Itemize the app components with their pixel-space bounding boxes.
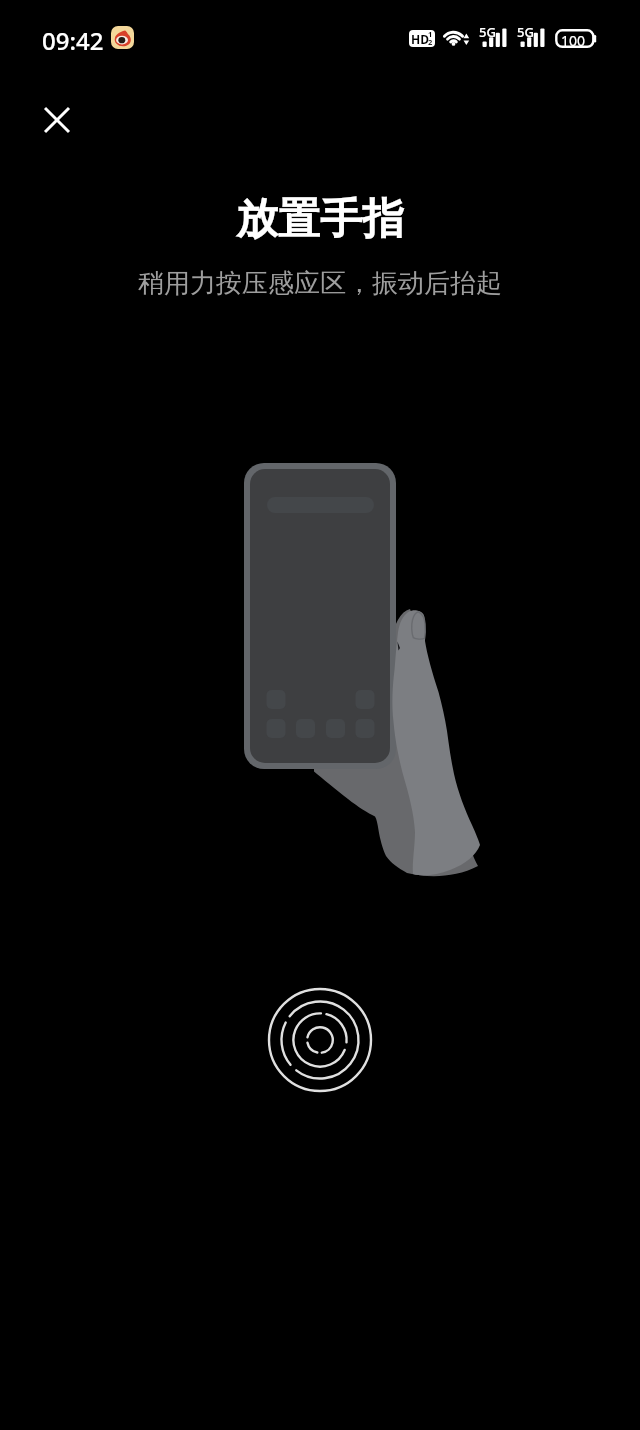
staticText: 5G	[479, 23, 496, 41]
button[interactable]: Close	[27, 90, 87, 150]
staticText: 1	[428, 29, 433, 39]
staticText: 放置手指	[236, 193, 404, 246]
staticText: 2	[428, 37, 433, 47]
staticText: 09:42	[42, 24, 104, 57]
staticText: 100	[561, 31, 586, 50]
staticText: 稍用力按压感应区，振动后抬起	[138, 267, 502, 300]
staticText: 5G	[517, 23, 534, 41]
button[interactable]: Fingerprint sensor	[255, 975, 385, 1105]
staticText: HD	[411, 31, 429, 47]
